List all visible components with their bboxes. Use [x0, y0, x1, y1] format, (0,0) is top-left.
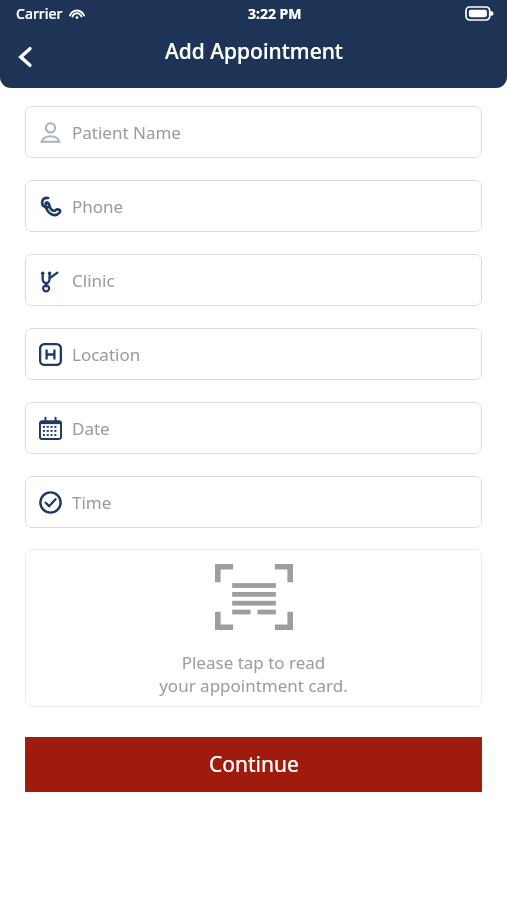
staticText: Continue [209, 750, 299, 779]
staticText: Add Appointment [165, 37, 343, 66]
staticText: Carrier [16, 4, 63, 23]
button[interactable]: Continue [25, 737, 482, 792]
staticText: Patient Name [72, 121, 181, 144]
staticText: Time [72, 491, 112, 514]
staticText: Date [72, 417, 110, 440]
button[interactable]: Location [25, 328, 482, 380]
button[interactable]: Date [25, 402, 482, 454]
staticText: Location [72, 343, 141, 366]
staticText: Please tap to read your appointment card… [159, 651, 348, 697]
button[interactable]: Phone [25, 180, 482, 232]
button[interactable]: Back [0, 31, 52, 83]
staticText: 3:22 PM [248, 4, 302, 23]
staticText: Phone [72, 195, 124, 218]
button[interactable]: Time [25, 476, 482, 528]
staticText: Clinic [72, 269, 115, 292]
button[interactable]: Clinic [25, 254, 482, 306]
button[interactable]: Tap to read your appointment card [25, 549, 482, 707]
button[interactable]: Patient Name [25, 106, 482, 158]
